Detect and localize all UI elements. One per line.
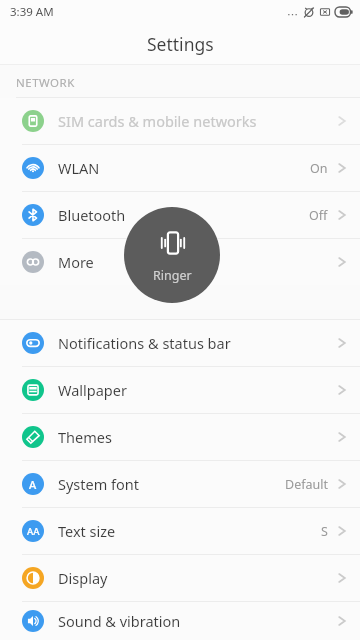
- button[interactable]: Sound & vibration: [0, 602, 360, 640]
- button[interactable]: AA: [0, 508, 360, 554]
- staticText: Wallpaper: [58, 380, 338, 400]
- staticText: More: [58, 252, 338, 272]
- staticText: Default: [285, 476, 328, 493]
- staticText: System font: [58, 474, 285, 494]
- staticText: 3:39 AM: [10, 4, 54, 20]
- staticText: S: [321, 523, 328, 540]
- button[interactable]: SIM cards & mobile networks: [0, 98, 360, 144]
- staticText: Notifications & status bar: [58, 333, 338, 353]
- staticText: SIM cards & mobile networks: [58, 111, 338, 131]
- button[interactable]: Themes: [0, 414, 360, 460]
- staticText: Off: [309, 207, 328, 224]
- staticText: Ringer: [153, 267, 192, 284]
- staticText: NETWORK: [16, 75, 75, 91]
- staticText: Display: [58, 568, 338, 588]
- button[interactable]: A: [0, 461, 360, 507]
- staticText: A: [29, 477, 37, 492]
- button[interactable]: Display: [0, 555, 360, 601]
- button[interactable]: WLAN: [0, 145, 360, 191]
- staticText: Sound & vibration: [58, 611, 338, 631]
- staticText: Settings: [147, 32, 214, 56]
- button[interactable]: More: [0, 239, 360, 285]
- button[interactable]: Wallpaper: [0, 367, 360, 413]
- staticText: Text size: [58, 521, 321, 541]
- button[interactable]: Notifications & status bar: [0, 320, 360, 366]
- staticText: AA: [27, 525, 40, 538]
- staticText: On: [310, 160, 328, 177]
- staticText: Themes: [58, 427, 338, 447]
- staticText: WLAN: [58, 158, 310, 178]
- button[interactable]: Bluetooth: [0, 192, 360, 238]
- staticText: Bluetooth: [58, 205, 309, 225]
